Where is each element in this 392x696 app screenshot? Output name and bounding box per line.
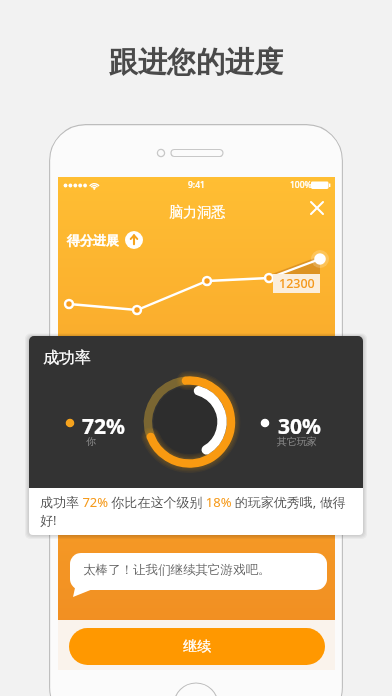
staticText: 你 xyxy=(86,435,96,448)
staticText: 100% xyxy=(290,179,312,191)
staticText: 30% xyxy=(278,412,321,441)
button[interactable]: 继续 xyxy=(69,628,325,665)
staticText: 12300 xyxy=(279,275,315,292)
staticText: 得分进展 xyxy=(67,232,119,248)
button[interactable]: 关闭 xyxy=(303,194,331,222)
staticText: 成功率 72% 你比在这个级别 18% 的玩家优秀哦, 做得好! xyxy=(40,493,355,529)
staticText: 太棒了！让我们继续其它游戏吧。 xyxy=(83,562,271,578)
staticText: 其它玩家 xyxy=(277,435,317,448)
staticText: 跟进您的进度 xyxy=(109,44,283,81)
staticText: 9:41 xyxy=(188,179,205,191)
staticText: 成功率 xyxy=(43,348,91,368)
staticText: 72% xyxy=(82,412,125,441)
staticText: 继续 xyxy=(183,638,211,656)
staticText: 脑力洞悉 xyxy=(169,204,225,222)
